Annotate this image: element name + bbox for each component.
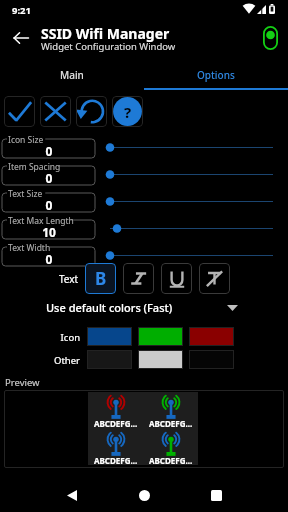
button[interactable]: Underline [161,263,192,294]
staticText: Preview [5,376,40,389]
staticText: B [95,267,107,290]
button[interactable]: Other color 1 [87,350,132,369]
button[interactable]: Other color 2 [138,350,183,369]
staticText: ABCDEFG... [149,455,193,465]
staticText: 10 [2,224,96,240]
staticText: 9:21 [12,4,31,17]
button[interactable]: Main [0,60,144,89]
button[interactable]: Home [127,478,161,512]
button[interactable]: Cancel [40,96,71,127]
button[interactable]: Icon color 1 [87,327,132,346]
button[interactable]: Accept [4,96,35,127]
button[interactable]: Back [55,478,89,512]
button[interactable]: Text Max Length [2,215,96,240]
staticText: 0 [2,197,96,213]
staticText: Icon [40,331,80,344]
button[interactable]: Recents [199,478,233,512]
staticText: 0 [2,251,96,267]
button[interactable]: Bold [85,263,116,294]
staticText: Other [40,354,80,367]
staticText: 0 [2,170,96,186]
staticText: ABCDEFG... [94,418,138,429]
staticText: Options [197,68,235,82]
button[interactable]: Text Size [2,188,96,213]
button[interactable]: Italic [123,263,154,294]
button[interactable]: Icon Size [2,134,96,159]
staticText: ABCDEFG... [94,455,138,465]
button[interactable]: Help [112,96,143,127]
staticText: Widget Configuration Window [41,40,176,53]
button[interactable]: Clear formatting [199,263,230,294]
button[interactable]: Power toggle [253,21,287,55]
staticText: Item Spacing [8,161,61,173]
button[interactable]: Item Spacing slider [96,161,288,186]
button[interactable]: Text Size slider [96,188,288,213]
staticText: Text [59,272,79,286]
button[interactable]: Reset [76,96,107,127]
staticText: Text Width [8,242,51,254]
button[interactable]: Text Max Length slider [96,215,288,240]
staticText: ABCDEFG... [149,418,193,429]
button[interactable]: Item Spacing [2,161,96,186]
button[interactable]: Text Width slider [96,242,288,267]
button[interactable]: Use default colors (Fast) [40,296,288,318]
button[interactable]: Icon color 3 [189,327,234,346]
button[interactable]: Icon Size slider [96,134,288,159]
button[interactable]: Text Width [2,242,96,267]
staticText: ? [124,102,132,122]
button[interactable]: Other color 3 [189,350,234,369]
staticText: SSID Wifi Manager [41,24,170,43]
staticText: Icon Size [8,134,44,146]
button[interactable]: Icon color 2 [138,327,183,346]
staticText: Use default colors (Fast) [46,300,173,315]
button[interactable]: Options [144,60,288,89]
staticText: 0 [2,143,96,159]
staticText: Main [60,68,84,82]
staticText: Text Size [8,188,43,200]
button[interactable]: Back [4,21,38,55]
staticText: Text Max Length [8,215,74,227]
